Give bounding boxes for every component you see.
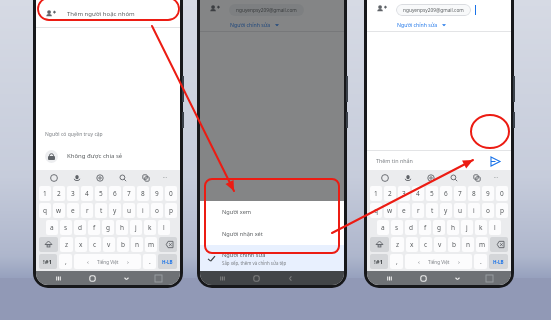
- button[interactable]: Voice input: [402, 172, 413, 183]
- button[interactable]: ,: [390, 254, 403, 269]
- button[interactable]: r: [81, 203, 93, 218]
- button[interactable]: .: [474, 254, 487, 269]
- button[interactable]: y: [440, 203, 452, 218]
- button[interactable]: q: [39, 203, 51, 218]
- button[interactable]: e: [67, 203, 79, 218]
- button[interactable]: Voice input: [71, 172, 82, 183]
- button[interactable]: Clipboard: [140, 172, 151, 183]
- button[interactable]: Người xem: [200, 201, 344, 223]
- button[interactable]: f: [88, 220, 100, 235]
- button[interactable]: j: [461, 220, 473, 235]
- button[interactable]: g: [102, 220, 114, 235]
- button[interactable]: Shift: [39, 237, 58, 252]
- button[interactable]: c: [89, 237, 101, 252]
- button[interactable]: Symbols: [39, 254, 57, 269]
- button[interactable]: 0: [496, 186, 508, 201]
- button[interactable]: Backspace: [490, 237, 508, 252]
- button[interactable]: H-LB: [489, 254, 508, 269]
- button[interactable]: 9: [151, 186, 163, 201]
- button[interactable]: f: [419, 220, 431, 235]
- button[interactable]: Send: [488, 154, 502, 168]
- button[interactable]: w: [53, 203, 65, 218]
- button[interactable]: Người chỉnh sửa: [200, 245, 344, 271]
- button[interactable]: Người nhận xét: [200, 223, 344, 245]
- button[interactable]: o: [151, 203, 163, 218]
- button[interactable]: 4: [81, 186, 93, 201]
- button[interactable]: q: [370, 203, 382, 218]
- button[interactable]: Search: [117, 172, 128, 183]
- button[interactable]: Emoji: [379, 172, 390, 183]
- button[interactable]: m: [145, 237, 157, 252]
- button[interactable]: H-LB: [158, 254, 177, 269]
- button[interactable]: k: [475, 220, 487, 235]
- button[interactable]: 0: [165, 186, 177, 201]
- button[interactable]: 6: [440, 186, 452, 201]
- button[interactable]: ‹: [74, 254, 141, 269]
- button[interactable]: Home: [87, 273, 98, 284]
- button[interactable]: Back: [285, 273, 296, 284]
- button[interactable]: h: [447, 220, 459, 235]
- button[interactable]: 1: [39, 186, 51, 201]
- button[interactable]: Settings: [94, 172, 105, 183]
- button[interactable]: Recents: [53, 273, 64, 284]
- button[interactable]: h: [116, 220, 128, 235]
- button[interactable]: r: [412, 203, 424, 218]
- button[interactable]: x: [75, 237, 87, 252]
- button[interactable]: Home: [251, 273, 262, 284]
- button[interactable]: i: [468, 203, 480, 218]
- button[interactable]: Symbols: [370, 254, 388, 269]
- button[interactable]: p: [165, 203, 177, 218]
- button[interactable]: Người chỉnh sửa: [200, 18, 344, 31]
- button[interactable]: t: [95, 203, 107, 218]
- button[interactable]: d: [405, 220, 417, 235]
- button[interactable]: m: [476, 237, 488, 252]
- button[interactable]: 5: [95, 186, 107, 201]
- button[interactable]: 1: [370, 186, 382, 201]
- button[interactable]: Người chỉnh sửa: [367, 18, 511, 31]
- button[interactable]: Search: [448, 172, 459, 183]
- button[interactable]: ,: [59, 254, 72, 269]
- button[interactable]: Recents: [217, 273, 228, 284]
- button[interactable]: Emoji: [48, 172, 59, 183]
- button[interactable]: 5: [426, 186, 438, 201]
- button[interactable]: Back: [452, 273, 463, 284]
- button[interactable]: 4: [412, 186, 424, 201]
- button[interactable]: 6: [109, 186, 121, 201]
- button[interactable]: 8: [137, 186, 149, 201]
- button[interactable]: d: [74, 220, 86, 235]
- button[interactable]: Back: [121, 273, 132, 284]
- button[interactable]: v: [434, 237, 446, 252]
- button[interactable]: Thêm người hoặc nhóm: [36, 1, 180, 27]
- button[interactable]: 9: [482, 186, 494, 201]
- button[interactable]: Shift: [370, 237, 389, 252]
- button[interactable]: l: [489, 220, 501, 235]
- button[interactable]: e: [398, 203, 410, 218]
- button[interactable]: 2: [53, 186, 65, 201]
- button[interactable]: c: [420, 237, 432, 252]
- button[interactable]: g: [433, 220, 445, 235]
- button[interactable]: p: [496, 203, 508, 218]
- button[interactable]: i: [137, 203, 149, 218]
- button[interactable]: l: [158, 220, 170, 235]
- button[interactable]: Không được chia sẻ: [36, 146, 180, 166]
- button[interactable]: j: [130, 220, 142, 235]
- button[interactable]: a: [377, 220, 389, 235]
- button[interactable]: Clipboard: [471, 172, 482, 183]
- button[interactable]: v: [103, 237, 115, 252]
- button[interactable]: 8: [468, 186, 480, 201]
- button[interactable]: s: [60, 220, 72, 235]
- button[interactable]: .: [143, 254, 156, 269]
- button[interactable]: z: [391, 237, 404, 252]
- button[interactable]: n: [462, 237, 474, 252]
- button[interactable]: ‹: [405, 254, 472, 269]
- button[interactable]: 7: [123, 186, 135, 201]
- button[interactable]: y: [109, 203, 121, 218]
- button[interactable]: Home: [418, 273, 429, 284]
- button[interactable]: k: [144, 220, 156, 235]
- button[interactable]: w: [384, 203, 396, 218]
- button[interactable]: 3: [398, 186, 410, 201]
- button[interactable]: s: [391, 220, 403, 235]
- button[interactable]: x: [406, 237, 418, 252]
- button[interactable]: b: [117, 237, 129, 252]
- button[interactable]: Backspace: [159, 237, 177, 252]
